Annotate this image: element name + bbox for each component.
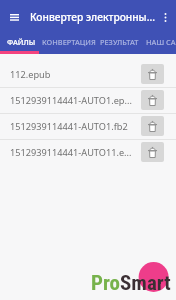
staticText: РЕЗУЛЬТАТ xyxy=(100,37,139,47)
button[interactable]: Delete file xyxy=(141,142,164,162)
button[interactable]: Delete file xyxy=(141,116,164,136)
button[interactable]: НАШ САЙТ xyxy=(143,34,176,54)
staticText: 1512939114441-AUTO1.fb2 xyxy=(10,120,138,133)
staticText: НАШ САЙТ xyxy=(146,37,176,47)
staticText: ФАЙЛЫ xyxy=(7,37,36,47)
button[interactable]: 112.epub xyxy=(0,62,176,87)
button[interactable]: Open navigation drawer xyxy=(0,0,28,34)
button[interactable]: 1512939114441-AUTO1.ep... xyxy=(0,88,176,113)
button[interactable]: 1512939114441-AUTO1.fb2 xyxy=(0,114,176,139)
staticText: 1512939114441-AUTO11.e... xyxy=(10,146,138,159)
button[interactable]: РЕЗУЛЬТАТ xyxy=(98,34,140,54)
button[interactable]: КОНВЕРТАЦИЯ xyxy=(39,34,99,54)
staticText: 112.epub xyxy=(10,68,138,81)
staticText: КОНВЕРТАЦИЯ xyxy=(42,37,96,47)
staticText: 1512939114441-AUTO1.ep... xyxy=(10,94,138,107)
button[interactable]: Delete file xyxy=(141,90,164,110)
button[interactable]: More options xyxy=(155,0,176,34)
button[interactable]: Delete file xyxy=(141,64,164,84)
button[interactable]: ФАЙЛЫ xyxy=(2,34,41,54)
staticText: Конвертер электронны... xyxy=(30,10,155,24)
staticText: Smart xyxy=(120,271,171,296)
button[interactable]: 1512939114441-AUTO11.e... xyxy=(0,140,176,165)
staticText: Pro xyxy=(91,271,120,296)
